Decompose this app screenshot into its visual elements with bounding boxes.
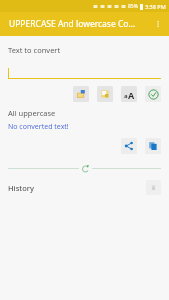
button[interactable]: Copy <box>145 138 161 154</box>
staticText: All uppercase <box>8 108 56 118</box>
staticText: Text to convert <box>8 45 61 55</box>
staticText: a <box>124 92 128 100</box>
button[interactable]: Change case <box>121 86 137 102</box>
button[interactable]: UPPERCASE And lowercase Co… <box>0 12 169 36</box>
staticText: A <box>128 89 135 100</box>
button[interactable]: Confirm <box>145 86 161 102</box>
button[interactable]: Paste <box>73 86 89 102</box>
button[interactable]: Restore <box>78 163 92 173</box>
button[interactable]: Copy input <box>97 86 113 102</box>
staticText: UPPERCASE And lowercase Co… <box>9 18 136 30</box>
staticText: 85% <box>128 3 138 10</box>
button[interactable]: Share <box>121 138 137 154</box>
button[interactable]: More options <box>147 13 169 35</box>
button[interactable]: Clear history <box>146 180 161 195</box>
staticText: 3:38 PM <box>145 3 166 10</box>
staticText: History <box>8 183 34 193</box>
staticText: No converted text! <box>8 122 69 132</box>
